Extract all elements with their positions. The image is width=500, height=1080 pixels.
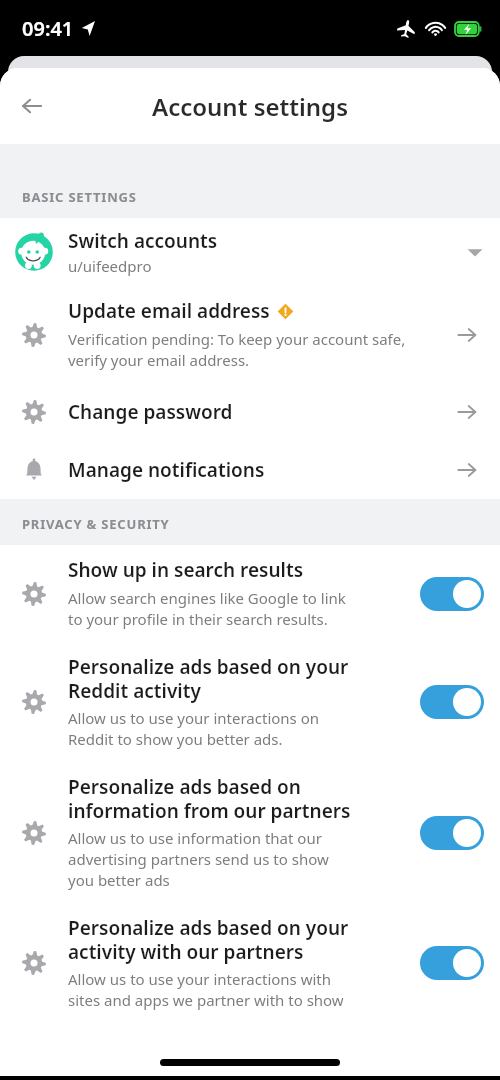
staticText: Allow us to use your interactions on Red… <box>68 708 320 750</box>
button[interactable]: Manage notifications <box>450 453 484 487</box>
staticText: BASIC SETTINGS <box>22 188 137 206</box>
button[interactable]: Personalize ads based on your activity w… <box>0 903 500 1023</box>
button[interactable]: Switch accounts <box>0 218 500 286</box>
staticText: Personalize ads based on information fro… <box>68 774 351 823</box>
button[interactable]: Personalize ads based on your Reddit act… <box>420 685 484 719</box>
staticText: Allow us to use your interactions with s… <box>68 969 344 1011</box>
button[interactable]: Show up in search results <box>0 545 500 642</box>
staticText: Allow us to use information that our adv… <box>68 828 329 891</box>
staticText: Show up in search results <box>68 557 304 583</box>
staticText: Change password <box>68 399 233 425</box>
button[interactable]: Personalize ads based on your Reddit act… <box>0 642 500 762</box>
button[interactable]: Update email address <box>450 318 484 352</box>
staticText: Manage notifications <box>68 457 265 483</box>
staticText: Update email address <box>68 298 270 324</box>
staticText: 09:41 <box>22 15 74 42</box>
staticText: Account settings <box>152 90 348 123</box>
button[interactable]: Update email address <box>0 286 500 383</box>
staticText: Personalize ads based on your Reddit act… <box>68 654 349 703</box>
button[interactable]: Personalize ads based on information fro… <box>0 762 500 903</box>
button[interactable]: Manage notifications <box>0 441 500 499</box>
button[interactable]: Back <box>8 82 56 130</box>
staticText: Personalize ads based on your activity w… <box>68 915 349 964</box>
button[interactable]: Show up in search results <box>420 577 484 611</box>
button[interactable]: Personalize ads based on information fro… <box>420 816 484 850</box>
button[interactable]: Personalize ads based on your activity w… <box>420 946 484 980</box>
staticText: Switch accounts <box>68 228 218 254</box>
button[interactable]: Change password <box>0 383 500 441</box>
button[interactable]: Change password <box>450 395 484 429</box>
staticText: Verification pending: To keep your accou… <box>68 329 406 371</box>
staticText: u/uifeedpro <box>68 256 152 276</box>
staticText: PRIVACY & SECURITY <box>22 515 170 533</box>
staticText: Allow search engines like Google to link… <box>68 588 346 630</box>
